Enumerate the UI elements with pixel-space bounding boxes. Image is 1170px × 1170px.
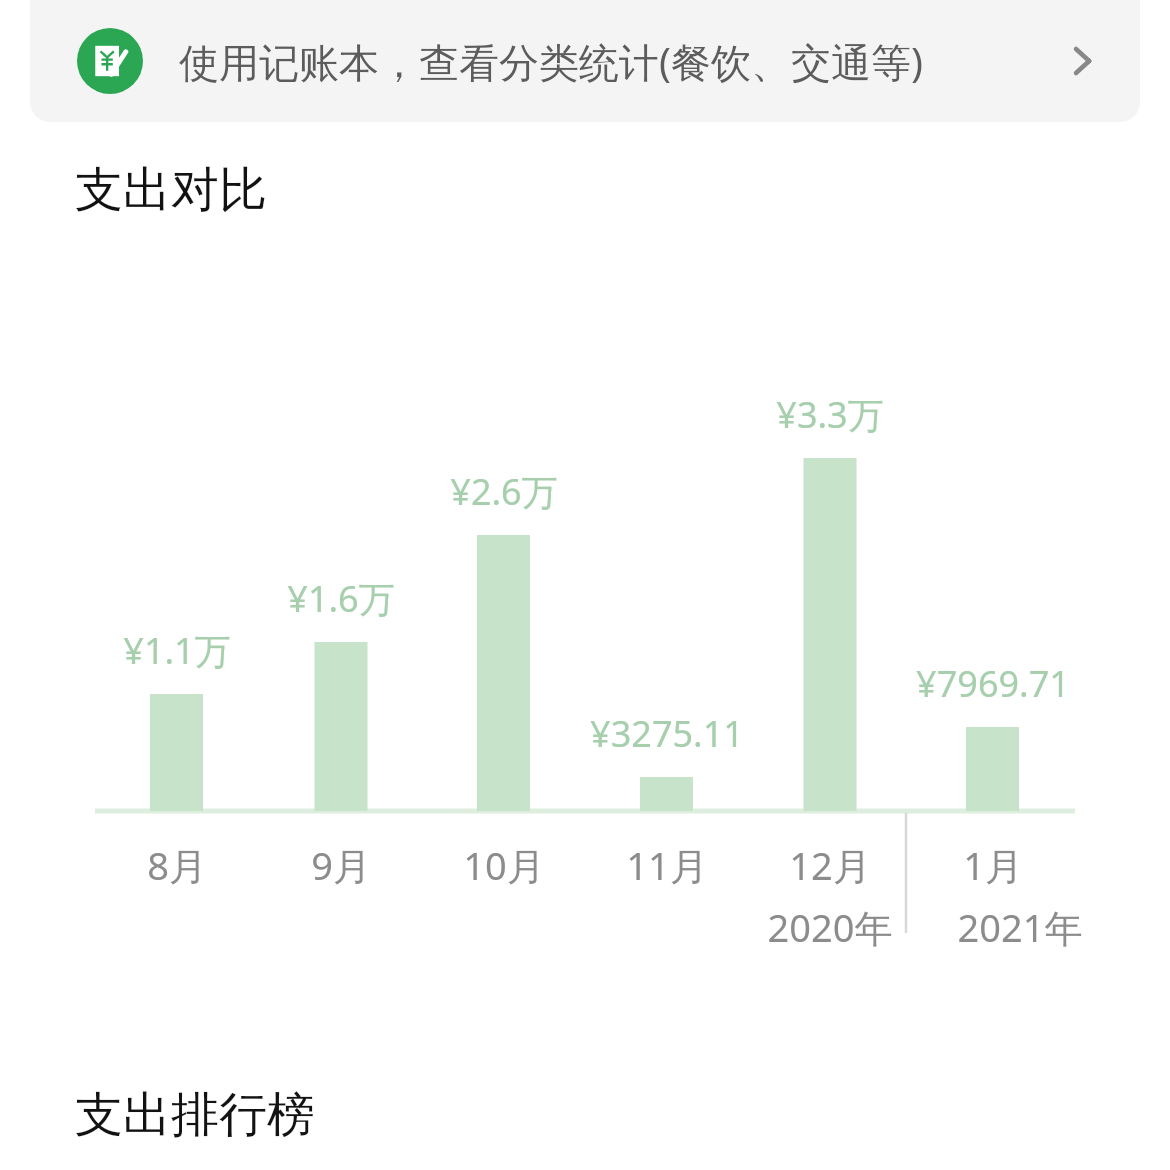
staticText: ¥7969.71 — [863, 659, 1123, 708]
staticText: 12月 — [720, 839, 940, 891]
button[interactable]: 使用记账本，查看分类统计(餐饮、交通等) — [30, 0, 1140, 122]
staticText: 11月 — [557, 839, 777, 891]
staticText: ¥2.6万 — [374, 467, 634, 516]
staticText: 2021年 — [890, 901, 1150, 953]
staticText: 8月 — [67, 839, 287, 891]
staticText: 2020年 — [700, 901, 960, 953]
staticText: 支出排行榜 — [75, 1085, 315, 1145]
staticText: 9月 — [231, 839, 451, 891]
staticText: 10月 — [394, 839, 614, 891]
staticText: 1月 — [883, 839, 1103, 891]
staticText: ¥3.3万 — [700, 390, 960, 439]
staticText: ¥3275.11 — [537, 709, 797, 758]
staticText: 支出对比 — [75, 160, 267, 220]
staticText: ¥1.1万 — [47, 626, 307, 675]
staticText: ¥1.6万 — [211, 574, 471, 623]
button[interactable]: 查看分类统计 — [1052, 31, 1112, 91]
staticText: 使用记账本，查看分类统计(餐饮、交通等) — [179, 34, 923, 89]
